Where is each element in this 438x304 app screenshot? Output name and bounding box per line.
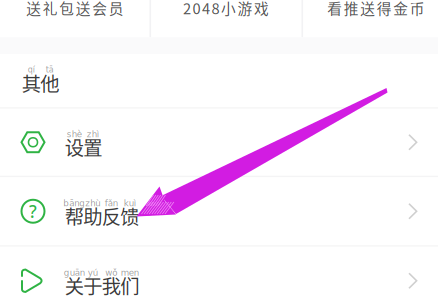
staticText: 馈 [120, 202, 139, 230]
button[interactable]: ? [0, 177, 438, 245]
staticText: 反 [102, 202, 121, 230]
staticText: 设 [65, 133, 84, 161]
staticText: 我 [102, 271, 121, 299]
button[interactable]: shè [0, 109, 438, 176]
staticText: 帮 [65, 202, 84, 230]
staticText: qí [28, 65, 35, 74]
button[interactable]: 2048小游戏 [150, 0, 302, 16]
staticText: 们 [120, 271, 139, 299]
staticText: wǒ [105, 268, 117, 278]
staticText: kuì [124, 198, 136, 208]
button[interactable]: 送礼包送会员 [0, 0, 150, 16]
staticText: 2048小游戏 [183, 0, 269, 18]
staticText: 他 [40, 69, 59, 97]
button[interactable]: guān [0, 247, 438, 304]
staticText: 看推送得金币 [327, 0, 425, 18]
staticText: 于 [83, 271, 102, 299]
staticText: guān [64, 268, 85, 278]
staticText: shè [67, 129, 82, 139]
staticText: 送礼包送会员 [26, 0, 124, 18]
staticText: ? [29, 200, 37, 223]
button[interactable]: 看推送得金币 [302, 0, 438, 16]
staticText: 其 [22, 69, 41, 97]
staticText: bāng [63, 198, 85, 208]
staticText: 关 [65, 271, 84, 299]
staticText: zhù [85, 198, 100, 208]
staticText: 置 [83, 133, 102, 161]
staticText: tā [46, 65, 54, 74]
staticText: fǎn [105, 198, 118, 208]
staticText: 助 [83, 202, 102, 230]
staticText: yú [88, 268, 98, 278]
staticText: zhì [87, 129, 99, 139]
staticText: men [121, 268, 139, 278]
